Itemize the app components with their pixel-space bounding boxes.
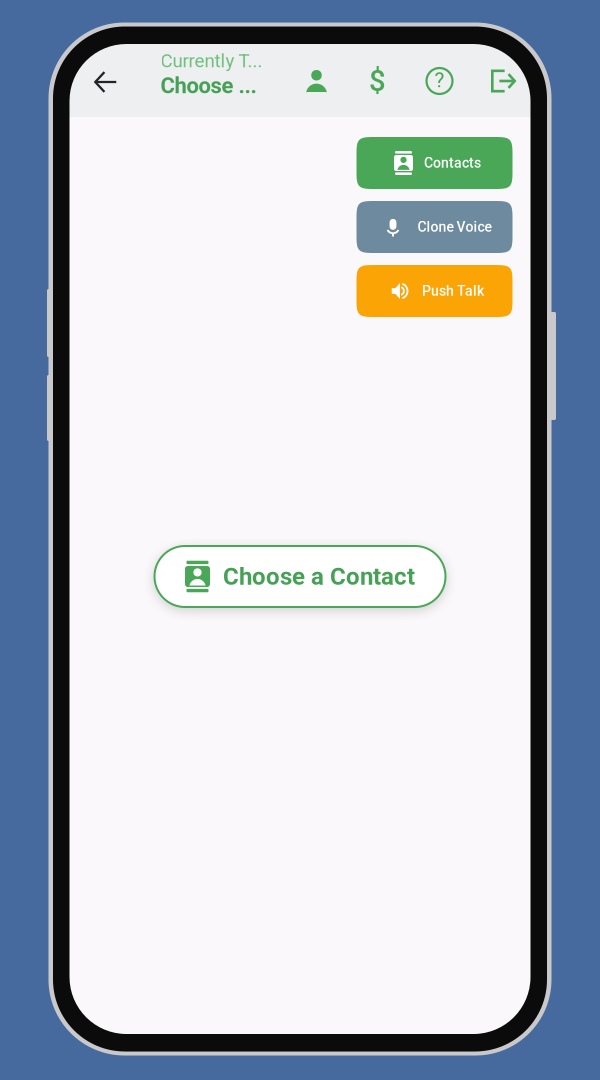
button[interactable]: Push Talk [356,265,512,317]
button[interactable]: Contacts [356,137,512,189]
staticText: $ [369,64,386,98]
button[interactable]: Log out [481,59,525,103]
staticText: ? [434,68,444,92]
button[interactable]: Billing [355,59,399,103]
button[interactable]: Account [294,59,338,103]
button[interactable]: Help [417,59,461,103]
staticText: Choose ... [160,73,256,99]
staticText: Contacts [424,155,481,171]
staticText: Currently T... [160,50,262,72]
button[interactable]: Back [82,59,128,105]
staticText: Choose a Contact [223,562,415,590]
staticText: Push Talk [422,283,484,299]
button[interactable]: Choose a Contact [154,546,445,607]
button[interactable]: Clone Voice [356,201,512,253]
staticText: Clone Voice [417,219,491,235]
